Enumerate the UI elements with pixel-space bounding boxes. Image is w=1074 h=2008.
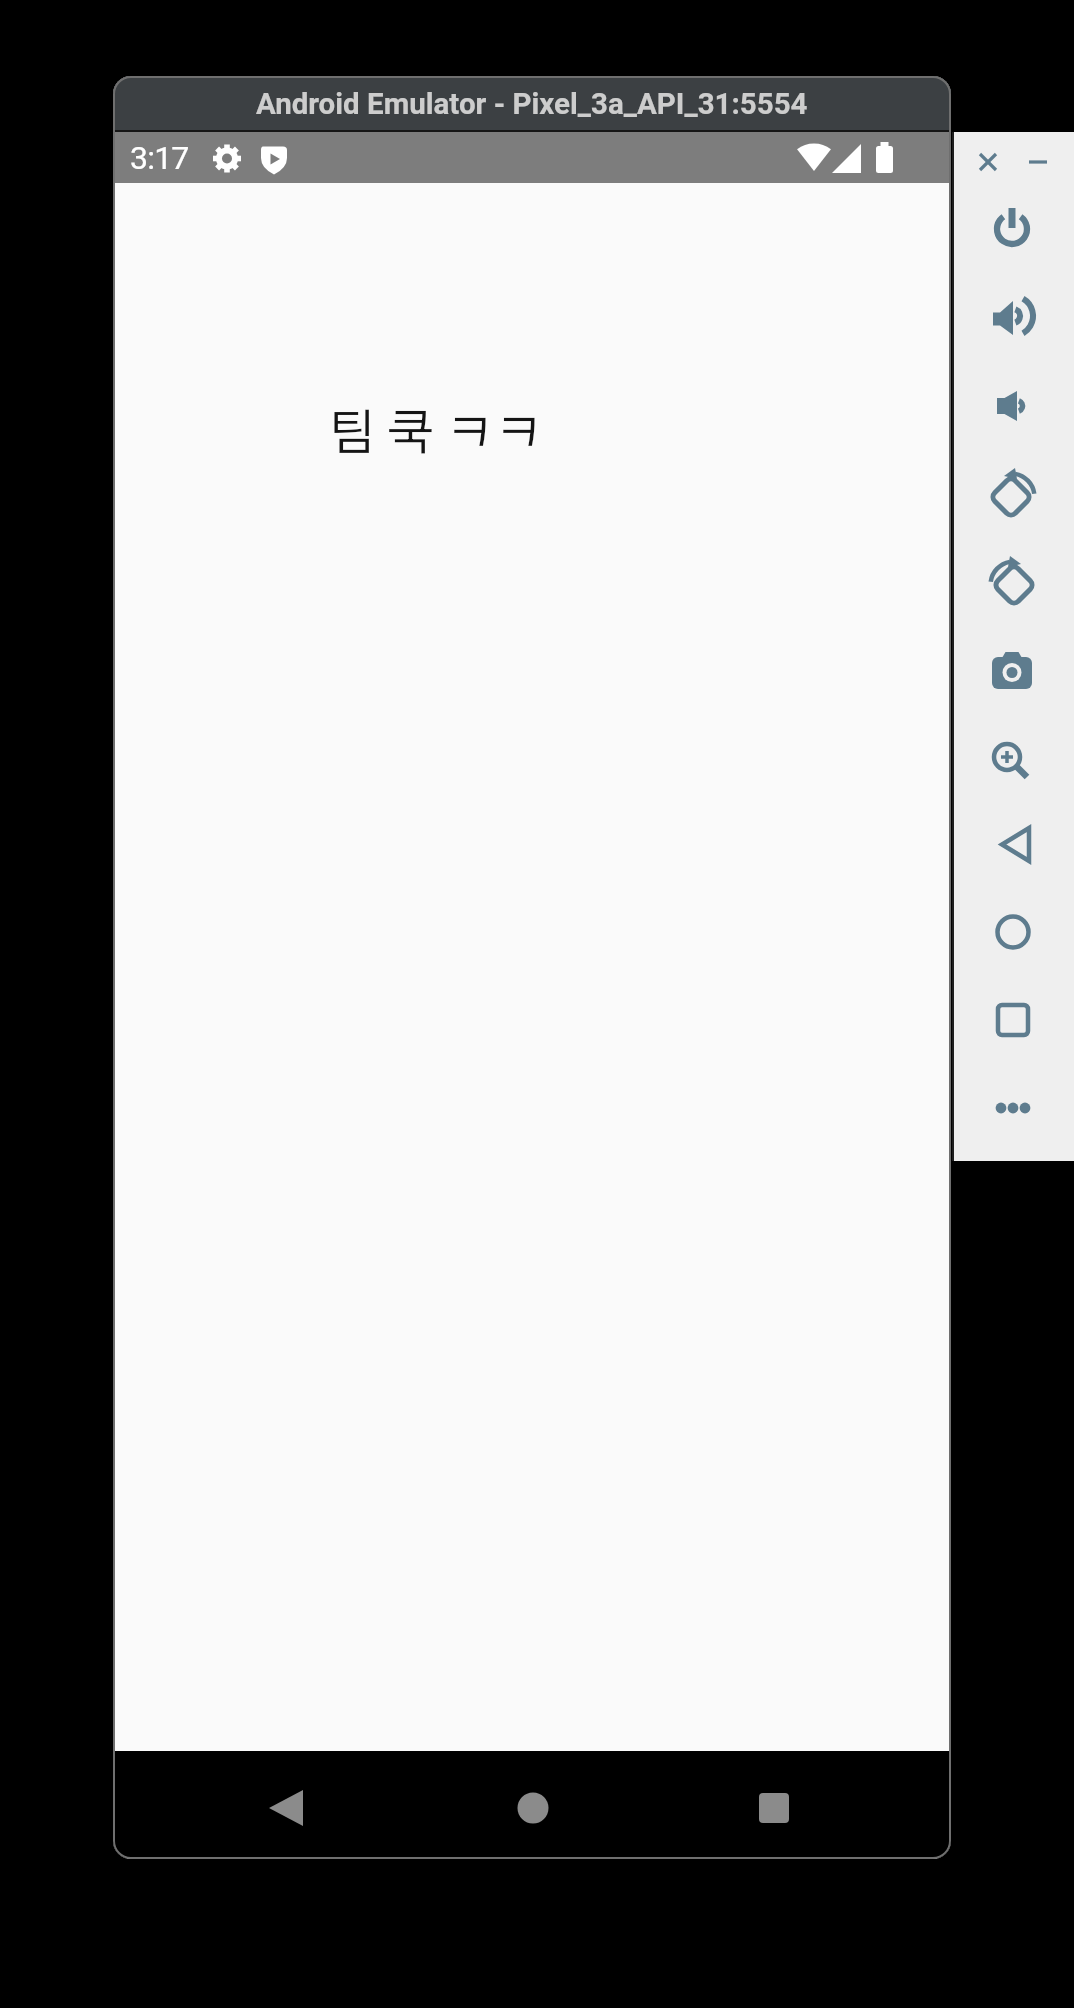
button[interactable] [750,1784,798,1832]
button[interactable] [509,1784,557,1832]
button[interactable] [262,1784,310,1832]
button[interactable] [989,556,1037,604]
button[interactable] [989,732,1037,780]
staticText: 팀 쿡 ㅋㅋ [328,410,545,459]
button[interactable] [989,996,1037,1044]
button[interactable] [968,142,1008,182]
button[interactable] [989,1084,1037,1132]
button[interactable] [989,644,1037,692]
button[interactable] [989,908,1037,956]
button[interactable] [1018,142,1058,182]
button[interactable] [989,204,1037,252]
staticText: 3:17 [130,139,189,177]
staticText: Android Emulator - Pixel_3a_API_31:5554 [256,87,808,122]
button[interactable] [989,820,1037,868]
button[interactable] [989,380,1037,428]
button[interactable] [989,292,1037,340]
button[interactable] [989,468,1037,516]
